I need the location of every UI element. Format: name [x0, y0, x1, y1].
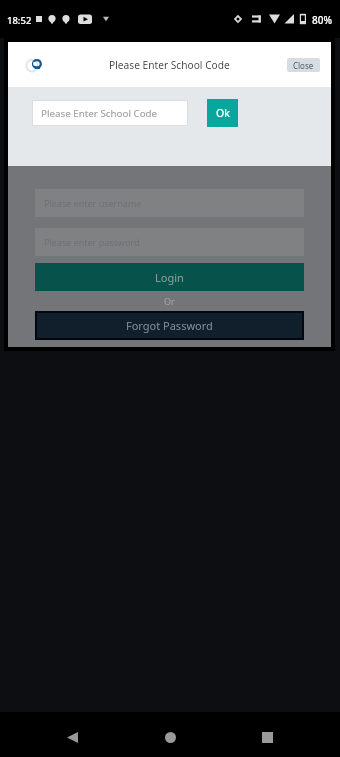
staticText: Close	[293, 60, 314, 71]
button[interactable]: Ok	[207, 99, 238, 127]
staticText: Ok	[216, 106, 230, 120]
button[interactable]: Forgot Password	[37, 313, 302, 338]
button[interactable]: Recent apps	[248, 718, 286, 756]
staticText: Login	[155, 270, 184, 285]
button[interactable]: Back	[53, 718, 91, 756]
staticText: Please Enter School Code	[109, 58, 230, 72]
staticText: Please enter password	[44, 236, 140, 248]
button[interactable]: Home	[151, 718, 189, 756]
staticText: Forgot Password	[126, 318, 213, 333]
staticText: Please Enter School Code	[41, 107, 158, 120]
button[interactable]: Login	[35, 263, 304, 291]
staticText: 18:52	[7, 14, 32, 27]
staticText: Or	[164, 295, 175, 307]
button[interactable]: Close	[287, 58, 320, 72]
staticText: Please enter username	[44, 197, 142, 209]
staticText: 80%	[312, 13, 332, 27]
